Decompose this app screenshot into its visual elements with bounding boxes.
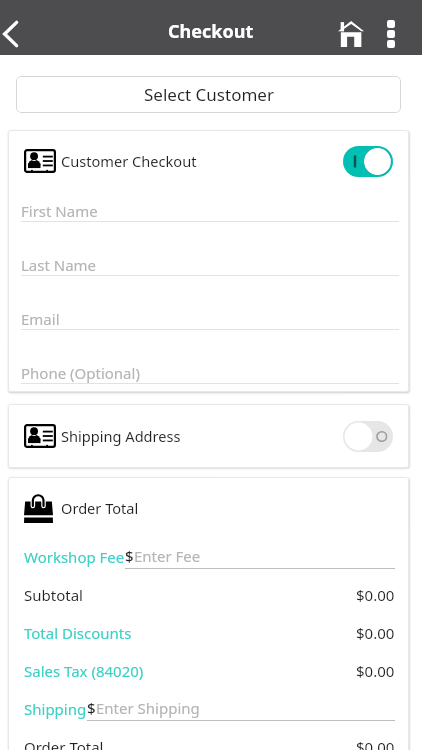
staticText: $ xyxy=(125,546,134,566)
staticText: Order Total xyxy=(61,498,139,518)
button[interactable]: Total Discounts xyxy=(24,614,395,652)
staticText: $0.00 xyxy=(356,737,395,750)
staticText: Subtotal xyxy=(24,585,83,605)
staticText: Enter Shipping xyxy=(96,698,200,718)
staticText: $0.00 xyxy=(356,585,395,605)
staticText: Shipping Address xyxy=(61,426,181,446)
button[interactable]: Back xyxy=(0,16,36,52)
staticText: Checkout xyxy=(168,19,254,44)
button[interactable]: Order Total xyxy=(24,728,395,750)
staticText: Total Discounts xyxy=(24,623,132,643)
button[interactable]: Home xyxy=(328,11,374,57)
staticText: $0.00 xyxy=(356,661,395,681)
staticText: Email xyxy=(21,309,60,329)
button[interactable]: Switch on xyxy=(343,146,393,177)
staticText: First Name xyxy=(21,201,98,221)
button[interactable]: Sales Tax (84020) xyxy=(24,652,395,690)
button[interactable]: First Name xyxy=(21,192,399,222)
staticText: Last Name xyxy=(21,255,97,275)
button[interactable]: Customer Checkout xyxy=(24,130,393,192)
button[interactable]: Shipping Address xyxy=(24,404,393,468)
staticText: Select Customer xyxy=(144,83,274,106)
button[interactable]: Switch off xyxy=(343,421,393,452)
button[interactable]: Phone (Optional) xyxy=(21,330,399,384)
button[interactable]: Select Customer xyxy=(16,76,401,113)
staticText: Order Total xyxy=(24,737,104,750)
button[interactable]: Shipping xyxy=(24,690,395,728)
button[interactable]: Workshop Fee xyxy=(24,538,395,576)
staticText: Enter Fee xyxy=(134,546,201,566)
button[interactable]: Email xyxy=(21,276,399,330)
button[interactable]: Subtotal xyxy=(24,576,395,614)
staticText: Phone (Optional) xyxy=(21,363,140,383)
staticText: Sales Tax (84020) xyxy=(24,661,144,681)
staticText: $ xyxy=(87,698,96,718)
staticText: Workshop Fee xyxy=(24,547,125,567)
staticText: Shipping xyxy=(24,699,87,719)
staticText: $0.00 xyxy=(356,623,395,643)
button[interactable]: More options xyxy=(374,17,408,51)
button[interactable]: Last Name xyxy=(21,222,399,276)
staticText: Customer Checkout xyxy=(61,151,197,171)
